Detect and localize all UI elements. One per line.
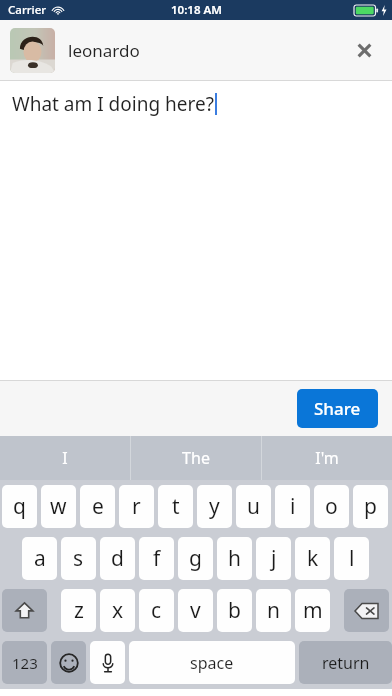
button[interactable]: Dictation (90, 641, 125, 684)
staticText: h (228, 544, 241, 573)
button[interactable]: 123 (2, 641, 47, 684)
button[interactable]: I'm (262, 436, 392, 480)
button[interactable]: h (217, 537, 252, 580)
button[interactable]: k (295, 537, 330, 580)
staticText: e (92, 492, 104, 521)
button[interactable]: t (158, 485, 193, 528)
button[interactable]: o (314, 485, 349, 528)
staticText: leonardo (68, 39, 140, 62)
staticText: y (209, 492, 220, 521)
button[interactable]: Shift (2, 589, 47, 632)
button[interactable]: a (22, 537, 57, 580)
button[interactable]: s (61, 537, 96, 580)
button[interactable]: c (139, 589, 174, 632)
button[interactable]: n (256, 589, 291, 632)
button[interactable]: Close (336, 22, 392, 78)
staticText: p (364, 492, 377, 521)
staticText: What am I doing here? (12, 91, 214, 117)
button[interactable]: z (61, 589, 96, 632)
button[interactable]: b (217, 589, 252, 632)
button[interactable]: e (80, 485, 115, 528)
staticText: i (290, 492, 296, 521)
button[interactable]: What am I doing here? (0, 81, 392, 380)
staticText: return (322, 652, 370, 674)
staticText: u (247, 492, 260, 521)
staticText: g (189, 544, 202, 573)
staticText: k (307, 544, 319, 573)
button[interactable]: m (295, 589, 330, 632)
staticText: 10:18 AM (171, 2, 222, 18)
staticText: v (190, 596, 201, 625)
staticText: I'm (315, 447, 339, 469)
button[interactable]: I (0, 436, 130, 480)
button[interactable]: y (197, 485, 232, 528)
staticText: a (34, 544, 46, 573)
staticText: Share (314, 397, 361, 420)
button[interactable]: return (299, 641, 392, 684)
staticText: d (111, 544, 124, 573)
button[interactable]: Share (297, 389, 378, 428)
button[interactable]: Backspace (344, 589, 389, 632)
staticText: j (271, 544, 277, 573)
staticText: n (267, 596, 280, 625)
staticText: q (13, 492, 26, 521)
button[interactable]: Emoji (51, 641, 86, 684)
button[interactable]: d (100, 537, 135, 580)
button[interactable]: p (353, 485, 388, 528)
staticText: m (303, 596, 323, 625)
button[interactable]: i (275, 485, 310, 528)
staticText: z (74, 596, 84, 625)
button[interactable]: q (2, 485, 37, 528)
staticText: 123 (12, 653, 38, 673)
staticText: b (228, 596, 241, 625)
button[interactable]: w (41, 485, 76, 528)
staticText: I (62, 447, 68, 469)
button[interactable]: x (100, 589, 135, 632)
button[interactable]: The (131, 436, 261, 480)
button[interactable]: j (256, 537, 291, 580)
staticText: c (151, 596, 162, 625)
staticText: s (73, 544, 84, 573)
staticText: f (153, 544, 161, 573)
button[interactable]: l (334, 537, 369, 580)
staticText: The (182, 447, 210, 469)
button[interactable]: g (178, 537, 213, 580)
button[interactable]: f (139, 537, 174, 580)
button[interactable]: r (119, 485, 154, 528)
staticText: r (132, 492, 141, 521)
staticText: x (112, 596, 124, 625)
button[interactable]: v (178, 589, 213, 632)
staticText: o (325, 492, 338, 521)
staticText: space (190, 652, 234, 674)
staticText: l (349, 544, 355, 573)
staticText: t (172, 492, 180, 521)
button[interactable]: Profile photo (10, 28, 55, 73)
staticText: w (50, 492, 67, 521)
staticText: Carrier (8, 2, 47, 18)
button[interactable]: space (129, 641, 295, 684)
button[interactable]: u (236, 485, 271, 528)
